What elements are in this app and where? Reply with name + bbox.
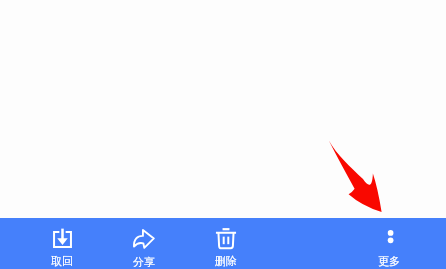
button[interactable]: 分享 bbox=[107, 218, 181, 269]
staticText: 更多 bbox=[378, 254, 400, 268]
staticText: 分享 bbox=[133, 255, 155, 269]
button[interactable]: 更多 bbox=[352, 218, 426, 269]
staticText: 删除 bbox=[215, 254, 237, 268]
staticText: 取回 bbox=[51, 254, 73, 268]
button[interactable]: 取回 bbox=[25, 218, 99, 269]
button[interactable]: 删除 bbox=[189, 218, 263, 269]
